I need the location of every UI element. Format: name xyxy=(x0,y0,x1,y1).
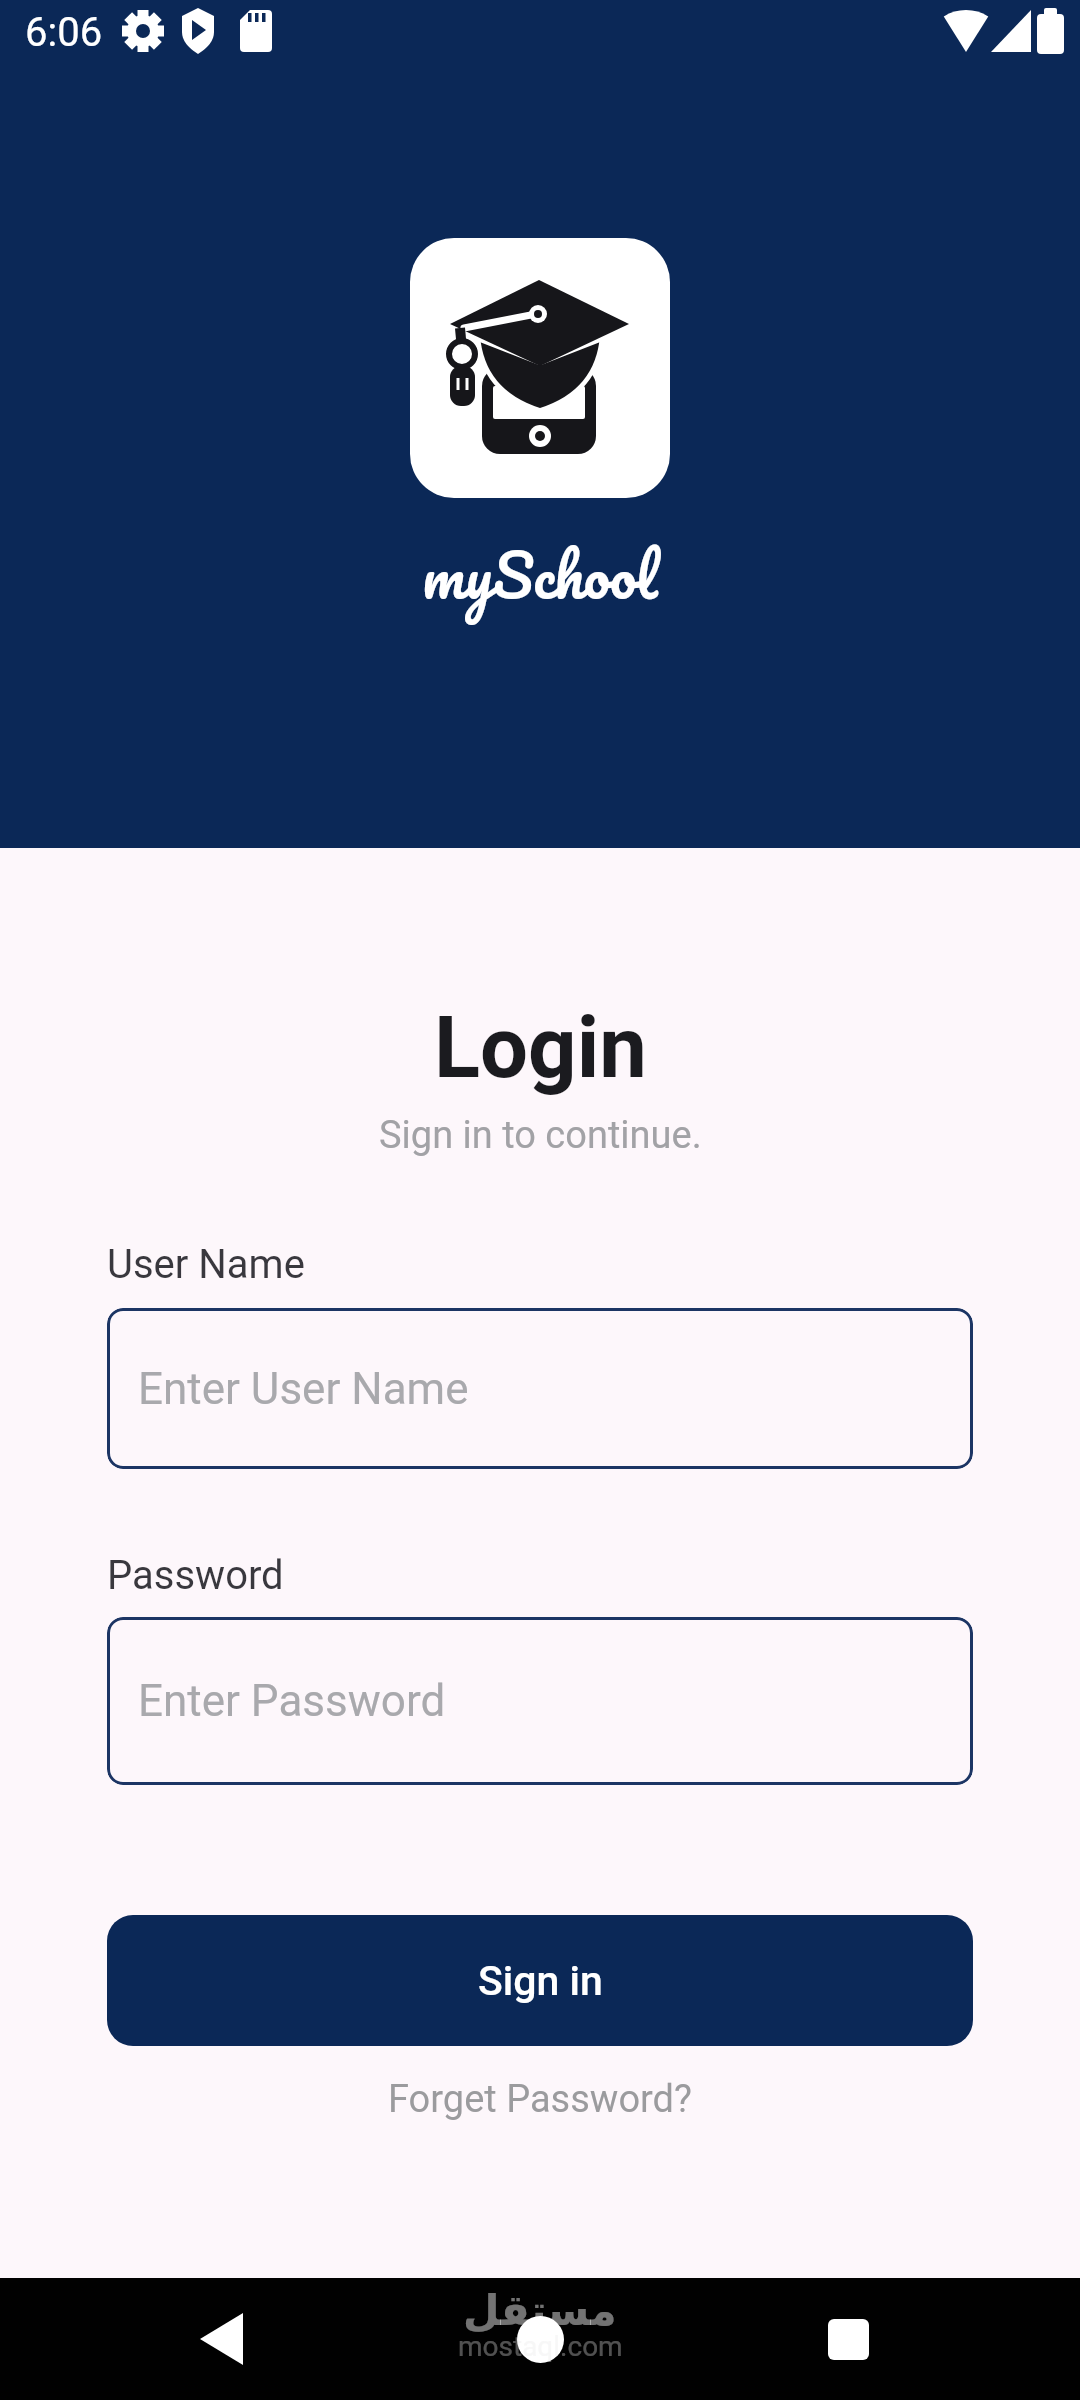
staticText: Sign in xyxy=(478,1957,603,2005)
staticText: mostaql.com xyxy=(458,2330,623,2363)
button[interactable]: Enter User Name xyxy=(107,1308,973,1469)
button[interactable] xyxy=(190,2303,262,2375)
staticText: مستقل xyxy=(463,2286,617,2335)
staticText: Login xyxy=(434,998,647,1098)
button[interactable]: Sign in xyxy=(107,1915,973,2046)
staticText: mySchool xyxy=(422,523,658,625)
staticText: Enter User Name xyxy=(138,1363,469,1415)
staticText: 6:06 xyxy=(25,9,103,56)
staticText: User Name xyxy=(107,1241,305,1288)
staticText: Enter Password xyxy=(138,1675,446,1727)
staticText: Sign in to continue. xyxy=(379,1113,702,1158)
button[interactable] xyxy=(504,2303,576,2375)
button[interactable]: Forget Password? xyxy=(388,2077,692,2122)
staticText: Password xyxy=(107,1552,284,1599)
button[interactable] xyxy=(812,2303,884,2375)
button[interactable]: Enter Password xyxy=(107,1617,973,1785)
staticText: Forget Password? xyxy=(388,2077,692,2122)
